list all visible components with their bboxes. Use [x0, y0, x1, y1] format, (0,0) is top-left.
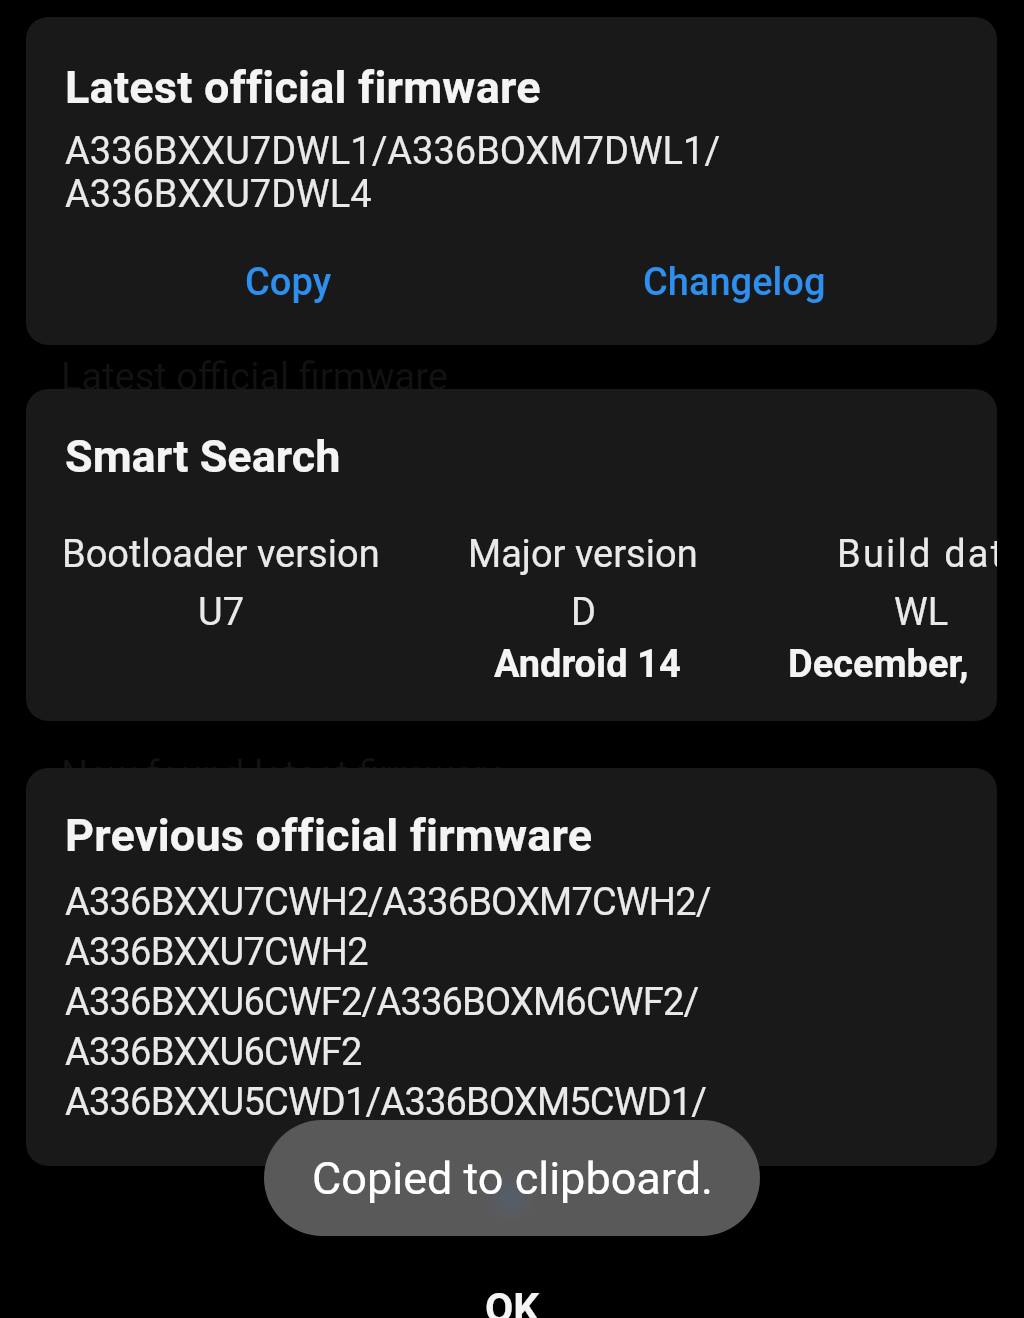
staticText: Major version — [468, 532, 698, 577]
staticText: D — [571, 590, 596, 635]
staticText: Copy — [245, 260, 332, 305]
staticText: Copied to clipboard. — [312, 1152, 713, 1205]
staticText: New found latest firmware — [61, 753, 508, 798]
staticText: OK — [485, 1284, 540, 1318]
staticText: U7 — [198, 590, 244, 635]
staticText: Latest official firmware — [65, 61, 541, 114]
staticText: Changelog — [643, 260, 826, 305]
staticText: WL — [894, 590, 949, 635]
staticText: Android 14 — [494, 642, 681, 687]
staticText: A336BXXU6CWF2 — [65, 1030, 362, 1075]
button[interactable]: Changelog — [511, 251, 958, 313]
staticText: A336BXXU7CWH2/A336BOXM7CWH2/ — [65, 880, 711, 925]
staticText: Latest official firmware — [61, 355, 448, 400]
staticText: A336BXXU5CWD1/A336BOXM5CWD1/ — [65, 1080, 707, 1125]
staticText: A336BXXU7DWL1/A336BOXM7DWL1/A336BXXU7DWL… — [65, 129, 765, 216]
button[interactable]: OK — [0, 1278, 1024, 1318]
staticText: A336BXXU7CWH2 — [65, 930, 368, 975]
staticText: Build date — [837, 532, 997, 577]
staticText: December, — [788, 642, 969, 687]
staticText: Bootloader version — [62, 532, 380, 577]
button[interactable]: Copy — [65, 251, 511, 313]
staticText: Smart Search — [65, 430, 341, 483]
staticText: Previous official firmware — [65, 809, 593, 862]
staticText: A336BXXU6CWF2/A336BOXM6CWF2/ — [65, 980, 699, 1025]
